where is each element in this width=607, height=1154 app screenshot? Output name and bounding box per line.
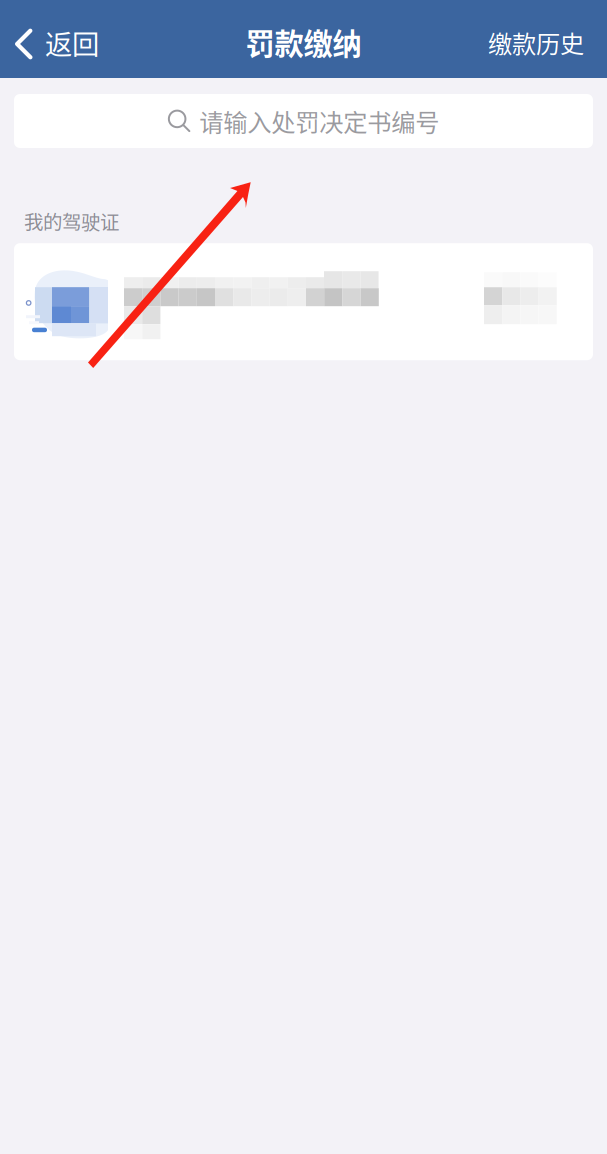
staticText: 请输入处罚决定书编号 [199,103,439,138]
button[interactable]: 我的驾驶证 [14,243,593,360]
staticText: 缴款历史 [488,25,584,60]
button[interactable]: 请输入处罚决定书编号 [14,94,593,148]
button[interactable]: 返回 [0,3,113,81]
staticText: 返回 [45,23,99,62]
staticText: 我的驾驶证 [24,207,119,235]
button[interactable]: 缴款历史 [474,3,607,81]
staticText: 罚款缴纳 [245,21,361,63]
